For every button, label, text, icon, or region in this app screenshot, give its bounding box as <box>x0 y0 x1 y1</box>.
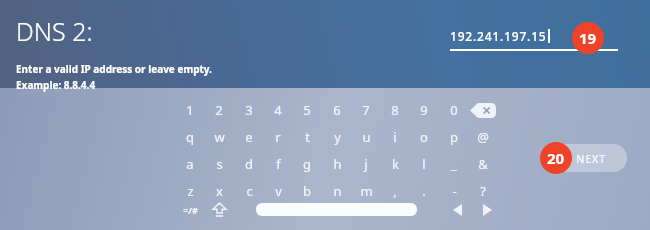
button[interactable]: , <box>382 180 408 202</box>
button[interactable]: 6 <box>324 99 350 121</box>
button[interactable]: Shift <box>205 200 233 220</box>
staticText: n <box>333 182 342 200</box>
staticText: @ <box>477 128 489 146</box>
button[interactable]: u <box>353 126 379 148</box>
button[interactable]: m <box>353 180 379 202</box>
button[interactable]: 8 <box>382 99 408 121</box>
staticText: 3 <box>245 101 253 119</box>
button[interactable]: 3 <box>236 99 262 121</box>
staticText: . <box>422 182 426 200</box>
button[interactable]: e <box>236 126 262 148</box>
staticText: w <box>214 128 225 146</box>
staticText: b <box>303 182 311 200</box>
button[interactable]: r <box>265 126 291 148</box>
staticText: ? <box>480 182 486 200</box>
button[interactable]: & <box>470 153 496 175</box>
staticText: g <box>303 155 311 173</box>
staticText: s <box>216 155 223 173</box>
staticText: NEXT <box>576 151 606 166</box>
button[interactable]: c <box>236 180 262 202</box>
button[interactable]: l <box>411 153 437 175</box>
button[interactable]: Space <box>256 203 417 216</box>
button[interactable]: 192.241.197.15 <box>450 28 620 44</box>
button[interactable]: q <box>177 126 203 148</box>
button[interactable]: d <box>236 153 262 175</box>
staticText: & <box>478 155 488 173</box>
button[interactable]: ? <box>470 180 496 202</box>
staticText: x <box>216 182 223 200</box>
staticText: a <box>186 155 194 173</box>
staticText: r <box>275 128 281 146</box>
staticText: v <box>275 182 282 200</box>
staticText: 20 <box>547 148 565 168</box>
button[interactable]: b <box>294 180 320 202</box>
button[interactable]: k <box>382 153 408 175</box>
staticText: d <box>245 155 253 173</box>
staticText: 4 <box>274 101 282 119</box>
button[interactable]: . <box>411 180 437 202</box>
staticText: q <box>186 128 194 146</box>
staticText: u <box>362 128 371 146</box>
button[interactable]: 2 <box>206 99 232 121</box>
button[interactable]: w <box>206 126 232 148</box>
staticText: e <box>245 128 253 146</box>
button[interactable]: a <box>177 153 203 175</box>
staticText: 0 <box>450 101 458 119</box>
staticText: _ <box>451 155 457 173</box>
staticText: - <box>452 182 457 200</box>
button[interactable]: n <box>324 180 350 202</box>
staticText: l <box>422 155 426 173</box>
button[interactable]: j <box>353 153 379 175</box>
staticText: j <box>364 155 368 173</box>
button[interactable]: 4 <box>265 99 291 121</box>
staticText: Enter a valid IP address or leave empty. <box>16 62 212 76</box>
button[interactable]: h <box>324 153 350 175</box>
staticText: p <box>450 128 458 146</box>
staticText: 8 <box>391 101 399 119</box>
staticText: =/# <box>183 204 198 216</box>
button[interactable]: Backspace <box>468 99 498 121</box>
button[interactable]: 0 <box>441 99 467 121</box>
button[interactable]: s <box>206 153 232 175</box>
button[interactable]: i <box>382 126 408 148</box>
button[interactable]: y <box>324 126 350 148</box>
staticText: 19 <box>579 28 597 48</box>
staticText: y <box>334 128 341 146</box>
staticText: m <box>360 182 373 200</box>
button[interactable]: z <box>177 180 203 202</box>
button[interactable]: _ <box>441 153 467 175</box>
staticText: c <box>246 182 253 200</box>
button[interactable]: - <box>441 180 467 202</box>
button[interactable]: o <box>411 126 437 148</box>
button[interactable]: f <box>265 153 291 175</box>
button[interactable]: v <box>265 180 291 202</box>
button[interactable]: 9 <box>411 99 437 121</box>
button[interactable]: Move cursor right <box>475 200 499 220</box>
staticText: 1 <box>186 101 194 119</box>
button[interactable]: NEXT <box>554 144 627 172</box>
button[interactable]: p <box>441 126 467 148</box>
staticText: i <box>393 128 397 146</box>
button[interactable]: x <box>206 180 232 202</box>
button[interactable]: 5 <box>294 99 320 121</box>
staticText: Example: 8.8.4.4 <box>16 78 96 92</box>
button[interactable]: t <box>294 126 320 148</box>
button[interactable]: 7 <box>353 99 379 121</box>
staticText: 192.241.197.15 <box>450 28 547 44</box>
button[interactable]: Move cursor left <box>445 200 469 220</box>
button[interactable]: =/# <box>176 200 204 220</box>
staticText: 2 <box>215 101 223 119</box>
staticText: t <box>305 128 310 146</box>
staticText: 9 <box>420 101 428 119</box>
button[interactable]: 1 <box>177 99 203 121</box>
staticText: DNS 2: <box>16 14 93 48</box>
button[interactable]: g <box>294 153 320 175</box>
staticText: z <box>187 182 194 200</box>
staticText: 7 <box>362 101 370 119</box>
staticText: 6 <box>333 101 341 119</box>
staticText: h <box>333 155 342 173</box>
staticText: k <box>392 155 399 173</box>
staticText: f <box>276 155 281 173</box>
button[interactable]: @ <box>470 126 496 148</box>
staticText: , <box>393 182 397 200</box>
